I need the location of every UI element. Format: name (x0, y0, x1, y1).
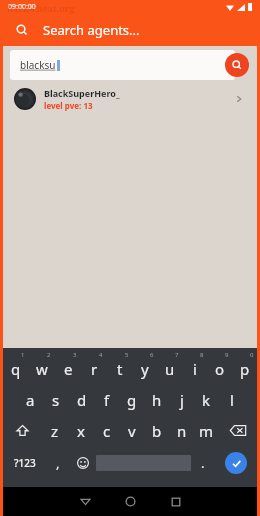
button[interactable]: p (232, 353, 257, 384)
button[interactable]: i (182, 353, 207, 384)
button[interactable]: r (81, 353, 107, 384)
staticText: 8 (200, 351, 204, 359)
staticText: w (36, 359, 48, 379)
staticText: q (11, 359, 21, 379)
staticText: , (56, 454, 60, 472)
staticText: s (52, 390, 60, 410)
button[interactable]: q (3, 353, 29, 384)
button[interactable]: b (144, 415, 169, 446)
button[interactable]: Search (225, 53, 249, 77)
button[interactable]: t (107, 353, 132, 384)
button[interactable]: c (94, 415, 119, 446)
staticText: c (103, 421, 111, 441)
button[interactable]: v (119, 415, 144, 446)
button[interactable]: ?123 (3, 446, 46, 480)
staticText: Search agents... (43, 21, 140, 39)
button[interactable]: n (169, 415, 194, 446)
staticText: blacksu (20, 58, 56, 72)
staticText: 2 (47, 351, 51, 359)
staticText: 0 (250, 351, 254, 359)
button[interactable]: k (194, 384, 219, 415)
button[interactable]: o (207, 353, 232, 384)
staticText: r (91, 359, 98, 379)
staticText: f (104, 390, 110, 410)
button[interactable]: , (46, 446, 70, 480)
staticText: ?123 (14, 456, 36, 470)
button[interactable]: y (132, 353, 157, 384)
staticText: p (240, 359, 250, 379)
button[interactable]: Back (63, 487, 108, 516)
button[interactable]: g (119, 384, 144, 415)
staticText: 6 (150, 351, 154, 359)
staticText: h (152, 390, 162, 410)
button[interactable]: Backspace (219, 415, 257, 446)
staticText: 3 (73, 351, 77, 359)
button[interactable]: f (94, 384, 119, 415)
button[interactable]: h (144, 384, 169, 415)
button[interactable]: blacksu (10, 50, 235, 80)
staticText: v (128, 421, 136, 441)
staticText: a (26, 390, 35, 410)
staticText: e (64, 359, 73, 379)
staticText: i (193, 359, 197, 379)
button[interactable]: m (194, 415, 219, 446)
button[interactable]: Search (11, 19, 33, 41)
staticText: hack-cheat.org (7, 2, 75, 14)
staticText: d (77, 390, 87, 410)
button[interactable]: j (169, 384, 194, 415)
button[interactable]: e (55, 353, 81, 384)
button[interactable]: w (29, 353, 55, 384)
staticText: 1 (21, 351, 25, 359)
button[interactable]: l (219, 384, 244, 415)
staticText: n (177, 421, 187, 441)
staticText: 4 (99, 351, 103, 359)
button[interactable]: Emoji (70, 446, 96, 480)
staticText: t (117, 359, 123, 379)
button[interactable]: x (68, 415, 94, 446)
button[interactable]: Recent apps (153, 487, 198, 516)
staticText: BlackSuperHero_ (44, 87, 120, 99)
button[interactable]: d (69, 384, 94, 415)
staticText: 7 (175, 351, 179, 359)
button[interactable]: Home (108, 487, 153, 516)
button[interactable]: a (17, 384, 43, 415)
staticText: m (199, 421, 214, 441)
staticText: y (141, 359, 149, 379)
staticText: u (165, 359, 175, 379)
staticText: l (230, 390, 234, 410)
staticText: . (201, 454, 205, 472)
staticText: b (152, 421, 162, 441)
staticText: 5 (125, 351, 129, 359)
staticText: 9 (225, 351, 229, 359)
button[interactable]: Shift (3, 415, 42, 446)
staticText: j (180, 390, 184, 410)
button[interactable]: u (157, 353, 182, 384)
staticText: z (51, 421, 59, 441)
button[interactable]: Done (215, 446, 257, 480)
button[interactable]: . (191, 446, 215, 480)
button[interactable]: s (43, 384, 69, 415)
staticText: level pve: 13 (44, 100, 93, 111)
button[interactable]: BlackSuperHero_ (3, 84, 257, 114)
staticText: k (202, 390, 211, 410)
staticText: x (77, 421, 85, 441)
button[interactable]: z (42, 415, 68, 446)
staticText: g (127, 390, 137, 410)
staticText: 09:00:00 (8, 2, 36, 12)
staticText: o (215, 359, 225, 379)
